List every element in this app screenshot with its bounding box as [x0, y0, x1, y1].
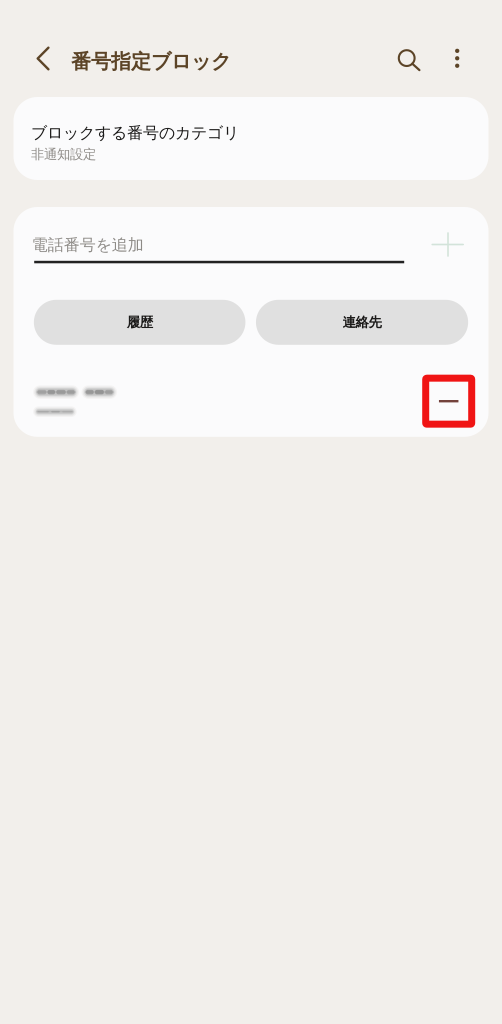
staticText: 履歴: [127, 314, 153, 330]
button[interactable]: Back: [21, 36, 65, 81]
button[interactable]: Add number: [426, 229, 470, 260]
button[interactable]: Search: [386, 36, 430, 81]
staticText: 電話番号を追加: [32, 235, 144, 255]
button[interactable]: More options: [435, 36, 479, 81]
staticText: 非通知設定: [31, 146, 96, 163]
button[interactable]: 履歴: [34, 300, 245, 345]
button[interactable]: ブロックする番号のカテゴリ: [13, 97, 488, 180]
staticText: 連絡先: [343, 314, 382, 330]
button[interactable]: 連絡先: [256, 300, 468, 345]
staticText: ブロックする番号のカテゴリ: [31, 123, 239, 143]
staticText: 番号指定ブロック: [71, 49, 231, 74]
button[interactable]: Remove blocked number: [422, 375, 475, 428]
